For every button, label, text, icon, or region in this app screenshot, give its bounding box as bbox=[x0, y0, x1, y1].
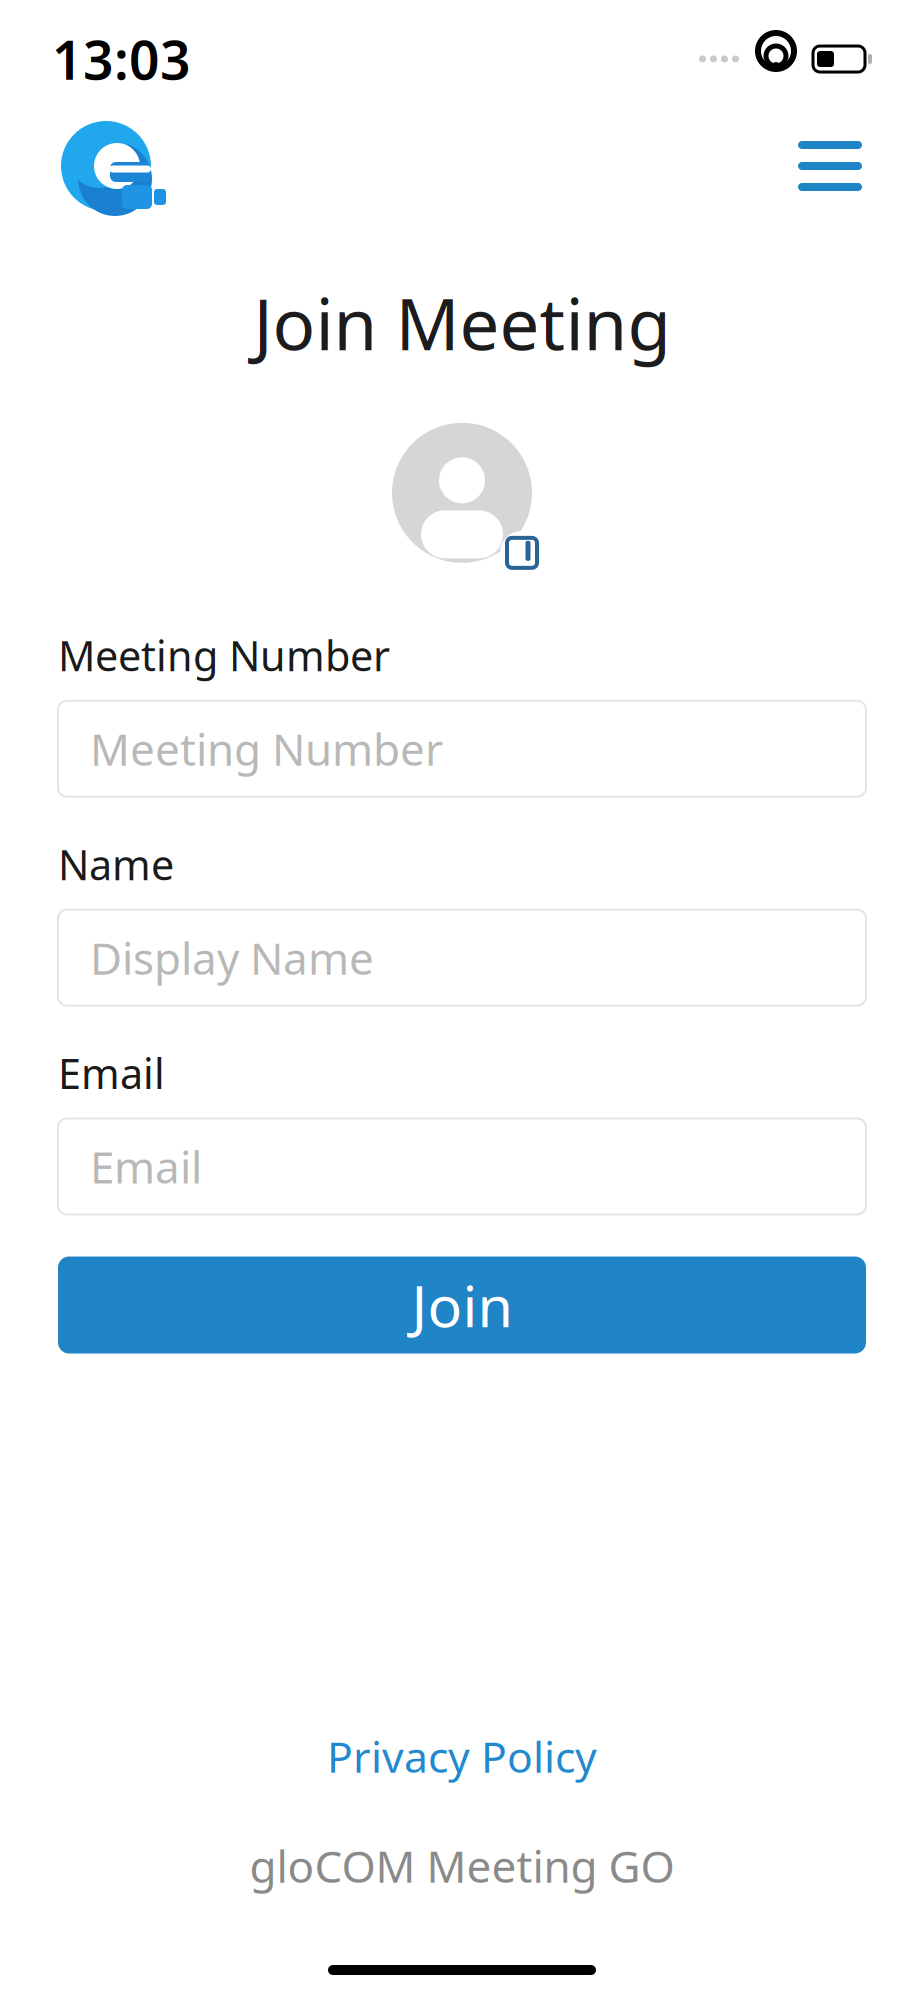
button[interactable]: Join bbox=[58, 1256, 866, 1353]
staticText: Name bbox=[58, 837, 174, 892]
staticText: Join Meeting bbox=[253, 276, 670, 370]
button[interactable]: Meeting Number bbox=[58, 701, 866, 797]
button[interactable]: Privacy Policy bbox=[307, 1718, 617, 1795]
staticText: 13:03 bbox=[52, 24, 191, 94]
staticText: Display Name bbox=[90, 928, 374, 987]
staticText: Join bbox=[411, 1267, 512, 1343]
staticText: Email bbox=[58, 1046, 165, 1100]
staticText: Meeting Number bbox=[90, 719, 443, 778]
staticText: gloCOM Meeting GO bbox=[249, 1837, 674, 1895]
button[interactable]: Menu bbox=[778, 121, 882, 211]
staticText: Privacy Policy bbox=[327, 1728, 597, 1785]
button[interactable]: Email bbox=[58, 1118, 866, 1214]
staticText: Email bbox=[90, 1137, 202, 1196]
button[interactable]: Edit profile picture bbox=[377, 418, 547, 568]
staticText: Meeting Number bbox=[58, 628, 390, 683]
button[interactable]: Display Name bbox=[58, 910, 866, 1006]
